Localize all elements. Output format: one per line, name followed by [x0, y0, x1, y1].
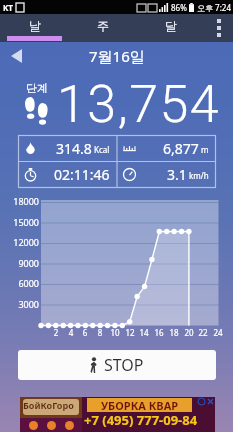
- staticText: 3.1: [167, 165, 187, 184]
- staticText: +7 (495) 777-09-84: [84, 411, 198, 429]
- staticText: 86%: [171, 2, 187, 13]
- staticText: 10: [107, 327, 123, 338]
- staticText: 오후 7:24: [197, 2, 231, 13]
- staticText: 02:11:46: [54, 165, 110, 184]
- staticText: KT: [3, 2, 13, 13]
- staticText: 22: [195, 327, 211, 338]
- staticText: БойКоГород: [23, 399, 79, 415]
- staticText: 12000: [1, 236, 39, 248]
- staticText: 주: [97, 18, 109, 33]
- staticText: 6,877: [163, 139, 199, 158]
- staticText: 단계: [26, 81, 48, 95]
- button[interactable]: 달: [137, 14, 205, 42]
- staticText: 6: [77, 327, 93, 338]
- button[interactable]: More options: [205, 14, 233, 42]
- staticText: STOP: [104, 354, 144, 376]
- staticText: 24: [210, 327, 226, 338]
- staticText: 12: [122, 327, 138, 338]
- button[interactable]: 6,877: [117, 135, 216, 161]
- button[interactable]: 3.1: [117, 161, 216, 188]
- staticText: km/h: [189, 170, 209, 181]
- staticText: 15000: [1, 216, 39, 228]
- staticText: 18000: [1, 195, 39, 207]
- staticText: УБОРКА КВАР: [101, 398, 179, 412]
- button[interactable]: STOP: [18, 350, 216, 380]
- staticText: 314.8: [56, 139, 92, 158]
- button[interactable]: БойКоГород: [20, 397, 215, 432]
- staticText: 6000: [1, 277, 39, 289]
- staticText: 8: [92, 327, 108, 338]
- staticText: 달: [165, 18, 177, 33]
- staticText: 20: [181, 327, 197, 338]
- button[interactable]: 314.8: [18, 135, 117, 161]
- staticText: 3000: [1, 298, 39, 310]
- staticText: Kcal: [94, 144, 110, 155]
- staticText: 날: [29, 18, 41, 33]
- staticText: 4: [63, 327, 79, 338]
- staticText: 7월16일: [89, 46, 145, 66]
- staticText: 2: [48, 327, 64, 338]
- staticText: 16: [151, 327, 167, 338]
- staticText: 13,754: [57, 74, 221, 134]
- staticText: 14: [136, 327, 152, 338]
- staticText: 9000: [1, 257, 39, 269]
- staticText: 18: [166, 327, 182, 338]
- staticText: m: [201, 144, 209, 155]
- button[interactable]: 02:11:46: [18, 161, 117, 188]
- button[interactable]: Previous day: [11, 46, 31, 66]
- button[interactable]: 주: [69, 14, 137, 42]
- button[interactable]: 날: [0, 14, 69, 42]
